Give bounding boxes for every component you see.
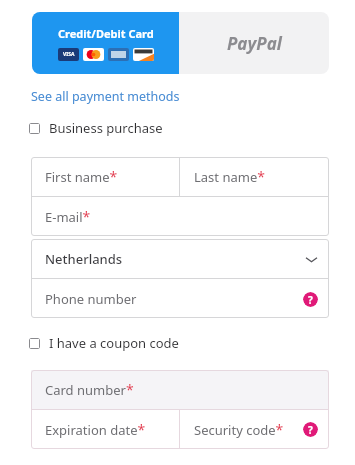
button[interactable]: PayPal [179,12,329,74]
staticText: Phone number [45,290,137,308]
staticText: ? [308,423,313,437]
staticText: Expiration date* [45,420,146,439]
staticText: First name* [45,167,118,186]
staticText: E-mail* [45,207,91,226]
staticText: Business purchase [49,119,163,137]
button[interactable]: First name* [31,157,179,196]
button[interactable]: Help [303,422,318,437]
button[interactable]: Phone number [31,279,329,318]
staticText: Security code* [194,420,284,439]
staticText: ? [308,293,313,307]
staticText: Last name* [194,167,265,186]
staticText: PayPal [227,32,282,55]
staticText: VISA [63,51,75,58]
button[interactable]: Last name* [180,157,329,196]
button[interactable]: Card number* [31,370,329,409]
button[interactable]: I have a coupon code [29,332,179,354]
staticText: I have a coupon code [49,334,179,352]
button[interactable]: Business purchase [29,117,163,139]
button[interactable]: Help [303,292,318,307]
button[interactable]: Credit/Debit Card [32,12,179,74]
staticText: Card number* [45,380,134,399]
button[interactable]: Security code* [180,410,329,449]
staticText: Netherlands [45,250,123,268]
button[interactable]: E-mail* [31,197,329,236]
button[interactable]: Expiration date* [31,410,179,449]
staticText: Credit/Debit Card [58,26,154,41]
button[interactable]: See all payment methods [31,88,180,105]
staticText: See all payment methods [31,88,180,105]
button[interactable]: Netherlands [31,239,329,278]
